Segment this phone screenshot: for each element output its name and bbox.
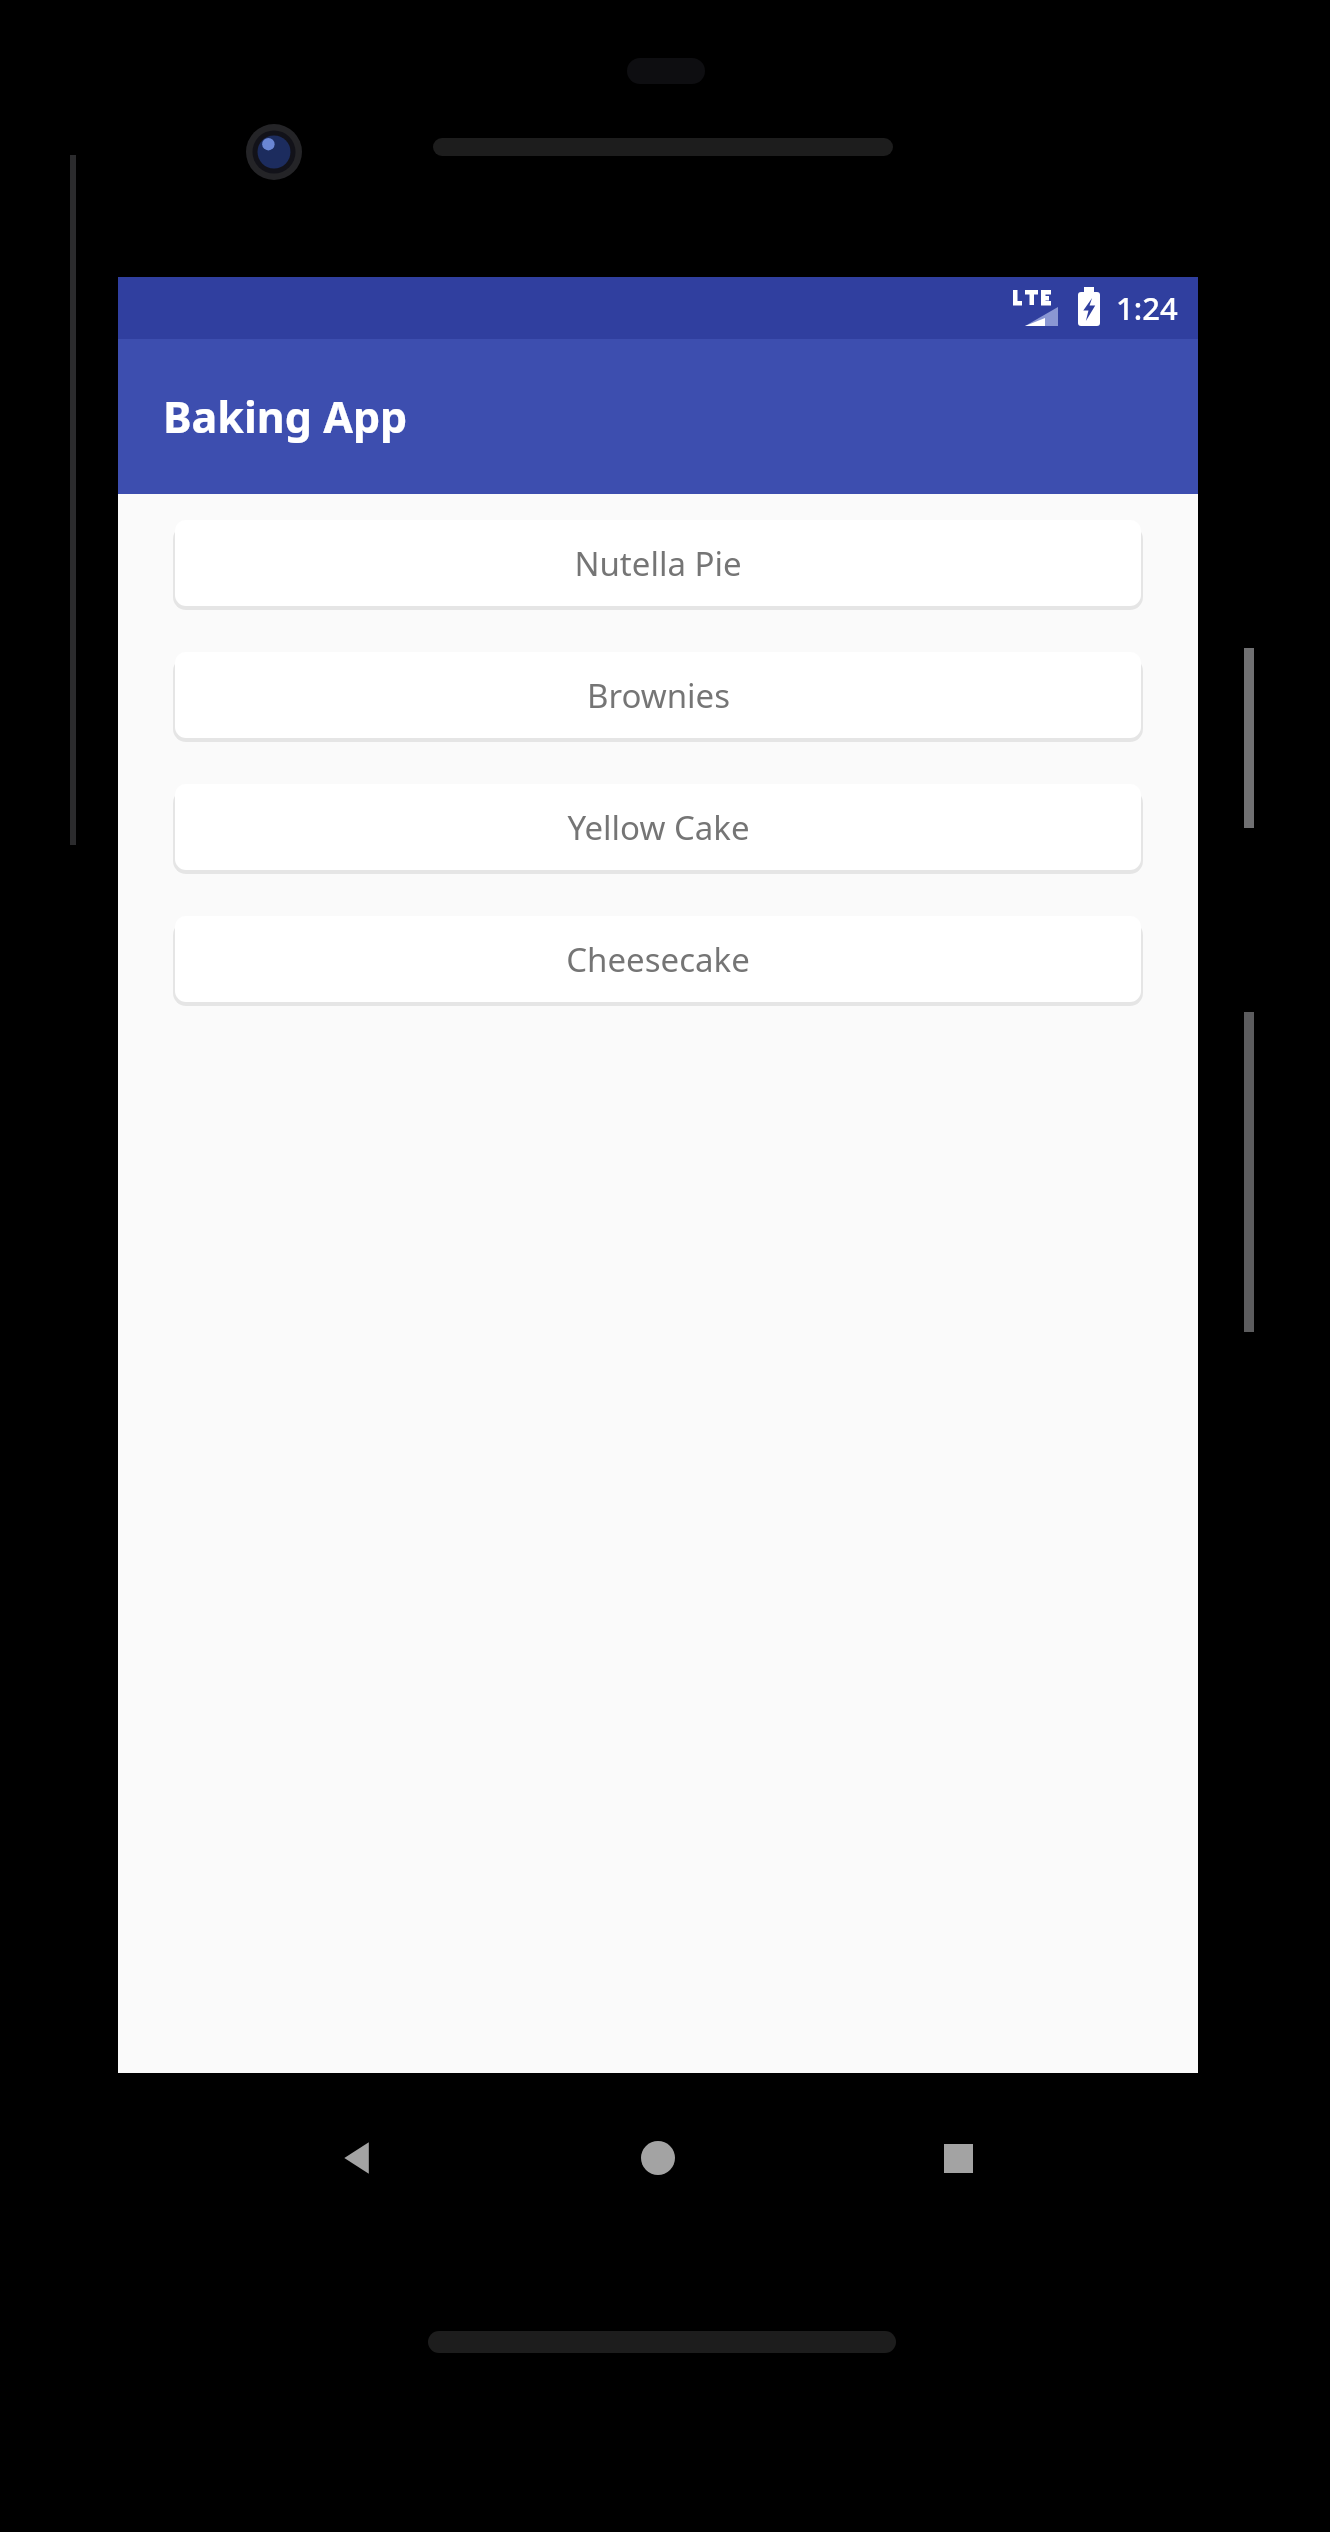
- button[interactable]: Recent apps: [898, 2098, 1018, 2218]
- button[interactable]: Back: [298, 2098, 418, 2218]
- button[interactable]: Home: [598, 2098, 718, 2218]
- button[interactable]: Cheesecake: [175, 916, 1141, 1002]
- staticText: Cheesecake: [566, 937, 750, 982]
- button[interactable]: Yellow Cake: [175, 784, 1141, 870]
- staticText: Baking App: [163, 387, 408, 446]
- staticText: Yellow Cake: [567, 805, 750, 850]
- button[interactable]: Brownies: [175, 652, 1141, 738]
- staticText: Nutella Pie: [574, 541, 742, 586]
- staticText: 1:24: [1116, 287, 1178, 329]
- staticText: Brownies: [587, 673, 730, 718]
- button[interactable]: Nutella Pie: [175, 520, 1141, 606]
